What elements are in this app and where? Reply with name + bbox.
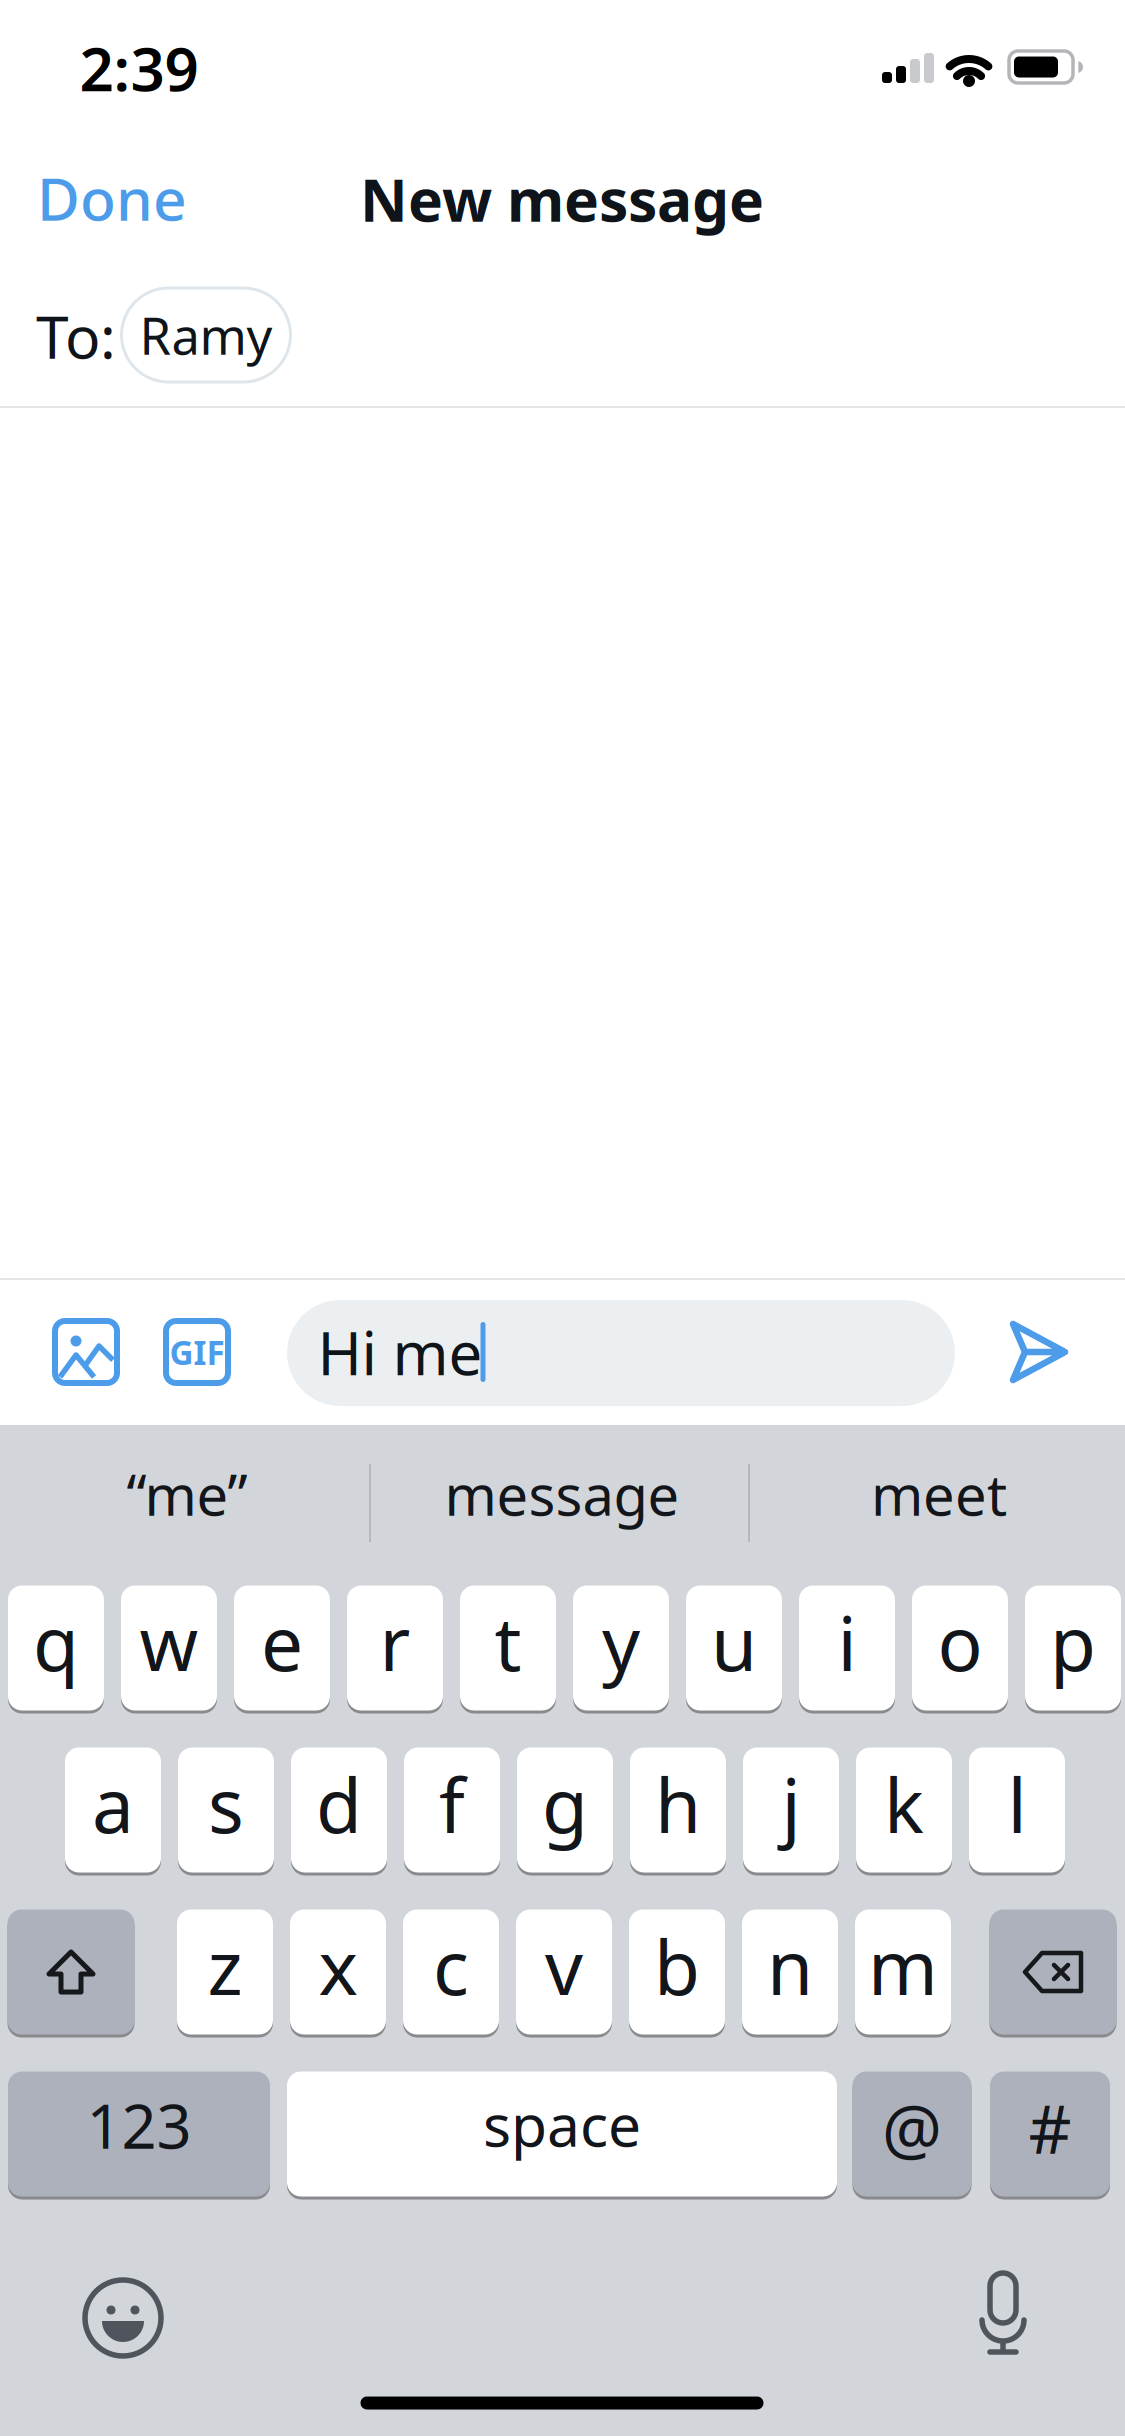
staticText: t [494, 1592, 521, 1692]
button[interactable]: k [856, 1745, 952, 1874]
button[interactable]: q [8, 1583, 104, 1712]
staticText: k [884, 1754, 924, 1854]
staticText: n [767, 1916, 813, 2016]
staticText: o [937, 1592, 982, 1692]
staticText: b [654, 1916, 700, 2016]
staticText: r [379, 1592, 410, 1692]
button[interactable]: g [517, 1745, 613, 1874]
staticText: c [433, 1916, 469, 2016]
staticText: h [655, 1754, 701, 1854]
button[interactable]: 123 [8, 2069, 270, 2198]
staticText: i [837, 1592, 856, 1692]
staticText: 123 [86, 2084, 191, 2166]
staticText: a [92, 1754, 134, 1854]
staticText: @ [882, 2084, 942, 2172]
staticText: To: [36, 297, 116, 375]
staticText: m [868, 1916, 938, 2016]
button[interactable]: y [573, 1583, 669, 1712]
button[interactable]: m [855, 1907, 951, 2036]
staticText: space [483, 2085, 641, 2163]
button[interactable]: Add GIF [166, 1321, 228, 1383]
button[interactable]: n [742, 1907, 838, 2036]
button[interactable]: Hi me [287, 1300, 955, 1406]
button[interactable]: o [912, 1583, 1008, 1712]
button[interactable]: Done [22, 153, 202, 243]
button[interactable]: z [177, 1907, 273, 2036]
button[interactable]: “me” [7, 1419, 367, 1569]
button[interactable]: Delete [989, 1907, 1116, 2036]
button[interactable]: l [969, 1745, 1065, 1874]
staticText: l [1007, 1754, 1026, 1854]
staticText: f [439, 1754, 465, 1854]
staticText: meet [871, 1457, 1007, 1531]
staticText: d [316, 1754, 362, 1854]
staticText: y [602, 1592, 640, 1692]
button[interactable]: d [291, 1745, 387, 1874]
button[interactable]: c [403, 1907, 499, 2036]
staticText: g [542, 1754, 588, 1854]
staticText: s [208, 1754, 244, 1854]
button[interactable]: u [686, 1583, 782, 1712]
button[interactable]: Ramy [121, 288, 290, 382]
button[interactable]: Shift [7, 1907, 134, 2036]
button[interactable]: a [65, 1745, 161, 1874]
button[interactable]: i [799, 1583, 895, 1712]
button[interactable]: s [178, 1745, 274, 1874]
button[interactable]: Emoji [85, 2280, 161, 2356]
staticText: x [318, 1916, 357, 2016]
button[interactable]: f [404, 1745, 500, 1874]
button[interactable]: meet [759, 1419, 1119, 1569]
button[interactable]: b [629, 1907, 725, 2036]
button[interactable]: v [516, 1907, 612, 2036]
button[interactable]: Dictate [975, 2270, 1031, 2358]
button[interactable]: space [287, 2069, 837, 2198]
staticText: q [33, 1592, 79, 1692]
staticText: w [139, 1592, 198, 1692]
staticText: 2:39 [79, 28, 198, 108]
staticText: message [444, 1457, 679, 1531]
staticText: u [711, 1592, 757, 1692]
staticText: “me” [126, 1457, 247, 1531]
button[interactable]: w [121, 1583, 217, 1712]
button[interactable]: Add photo [55, 1321, 117, 1383]
button[interactable]: @ [852, 2069, 971, 2198]
staticText: e [261, 1592, 303, 1692]
button[interactable]: e [234, 1583, 330, 1712]
staticText: GIF [169, 1330, 224, 1374]
staticText: p [1050, 1592, 1096, 1692]
staticText: z [207, 1916, 242, 2016]
button[interactable]: h [630, 1745, 726, 1874]
button[interactable]: message [382, 1419, 742, 1569]
button[interactable]: # [990, 2069, 1110, 2198]
staticText: New message [360, 160, 764, 238]
staticText: Hi me [317, 1312, 482, 1392]
staticText: Ramy [139, 301, 272, 369]
staticText: v [545, 1916, 583, 2016]
button[interactable]: p [1025, 1583, 1121, 1712]
staticText: j [781, 1754, 800, 1854]
button[interactable]: j [743, 1745, 839, 1874]
button[interactable]: x [290, 1907, 386, 2036]
button[interactable]: r [347, 1583, 443, 1712]
button[interactable]: t [460, 1583, 556, 1712]
staticText: Done [37, 159, 187, 237]
staticText: # [1028, 2084, 1071, 2172]
button[interactable]: Send [1009, 1321, 1069, 1383]
